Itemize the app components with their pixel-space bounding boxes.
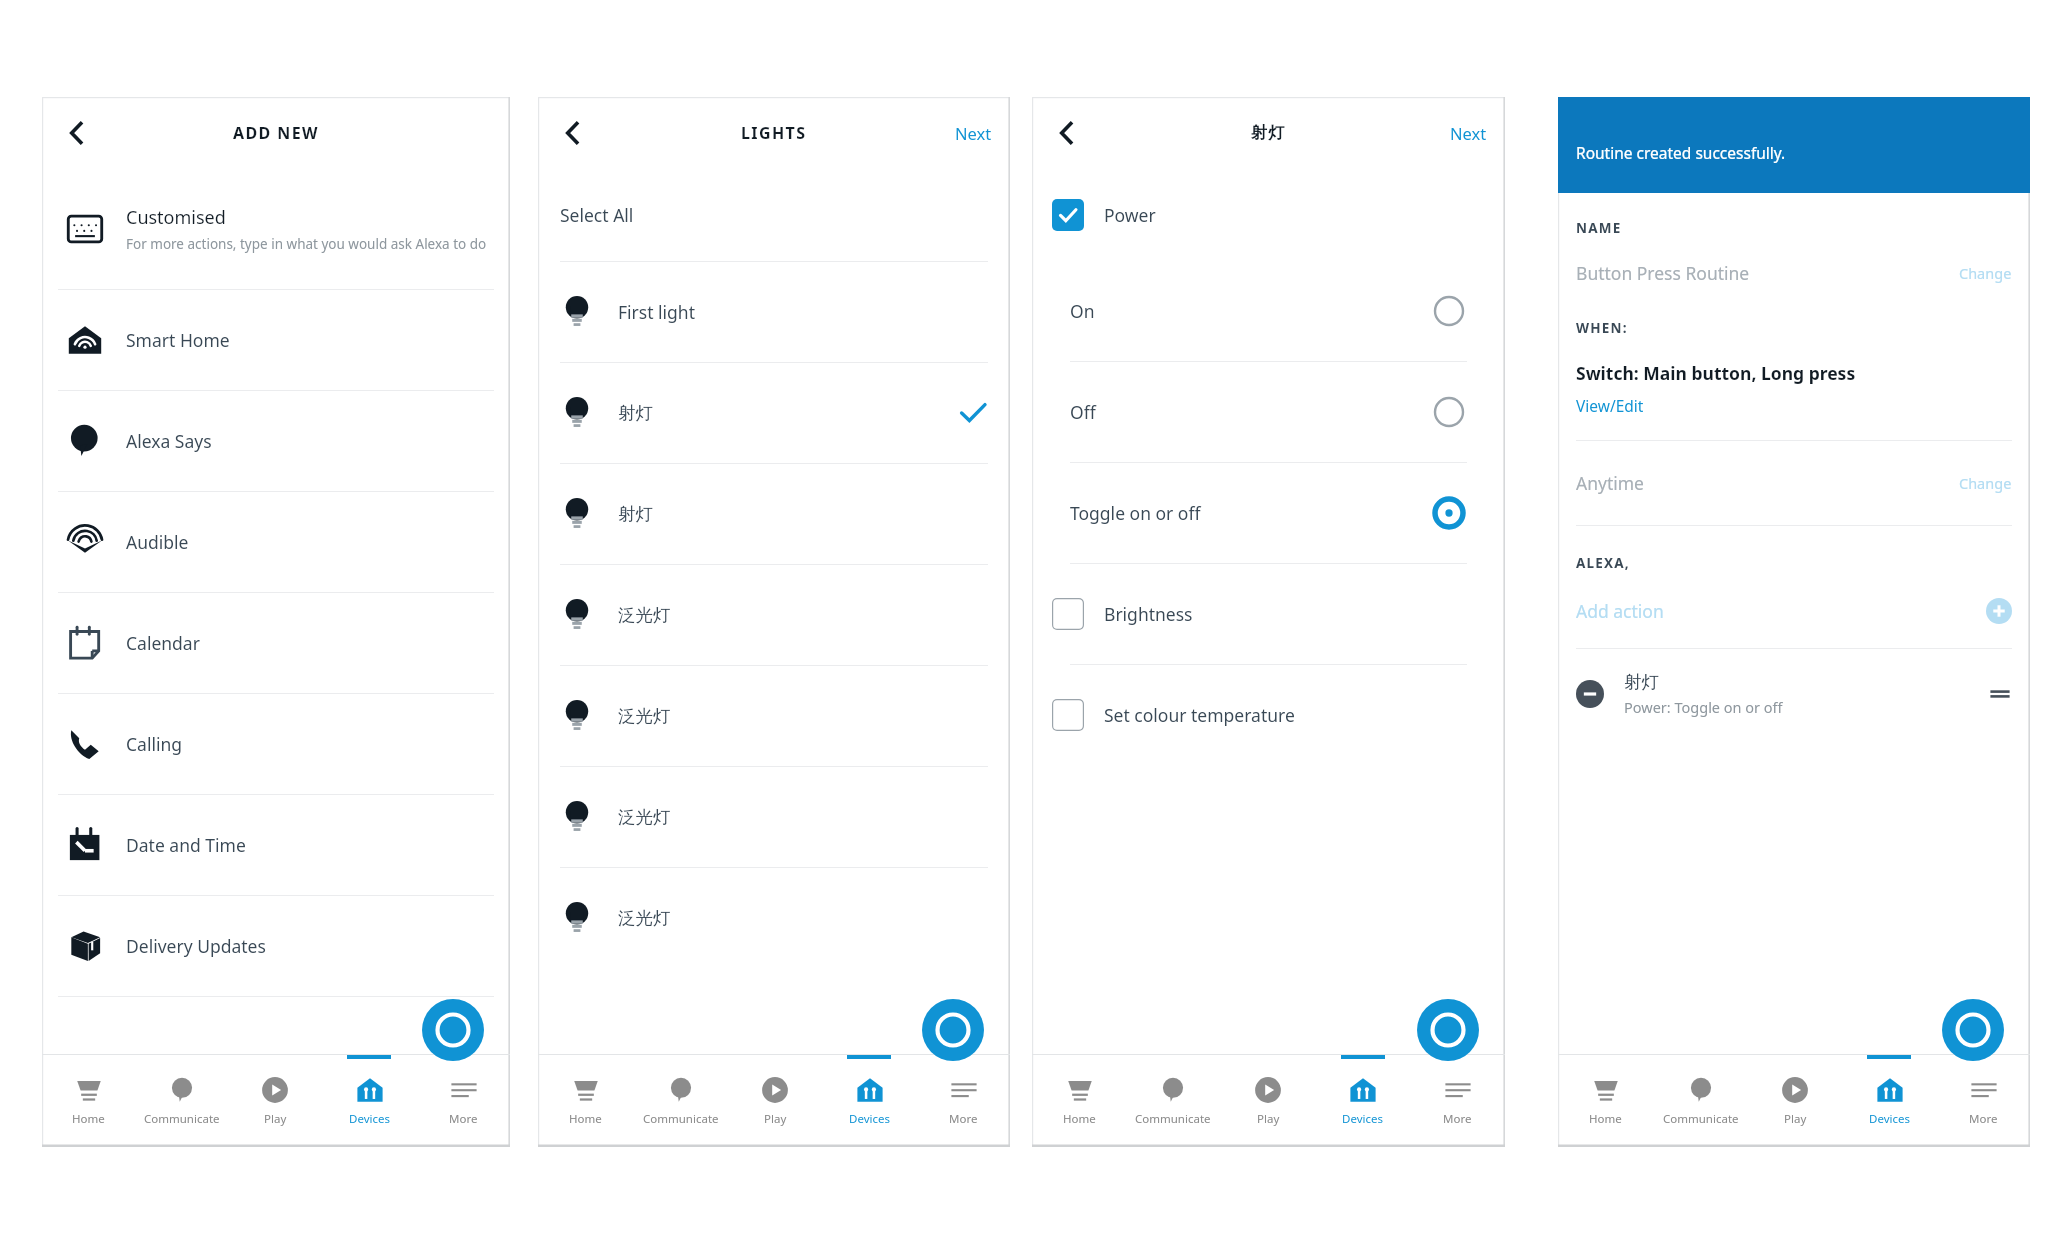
button[interactable]: Power bbox=[1032, 169, 1505, 261]
staticText: 射灯 bbox=[618, 402, 653, 424]
button[interactable]: Play bbox=[1220, 1055, 1315, 1147]
button[interactable]: Play bbox=[1748, 1055, 1842, 1147]
button[interactable]: On bbox=[1032, 261, 1505, 361]
button[interactable]: Communicate bbox=[1653, 1055, 1748, 1147]
button[interactable]: Alexa Says bbox=[42, 391, 510, 491]
button[interactable]: Devices bbox=[1842, 1055, 1936, 1147]
staticText: Devices bbox=[1342, 1111, 1383, 1127]
staticText: Routine created successfully. bbox=[1576, 142, 1786, 163]
staticText: Play bbox=[1784, 1111, 1807, 1127]
button[interactable]: Smart Home bbox=[42, 290, 510, 390]
staticText: First light bbox=[618, 300, 695, 324]
staticText: NAME bbox=[1576, 219, 1622, 237]
staticText: Devices bbox=[849, 1111, 890, 1127]
staticText: Communicate bbox=[1135, 1111, 1211, 1127]
button[interactable]: Audible bbox=[42, 492, 510, 592]
button[interactable]: Devices bbox=[322, 1055, 416, 1147]
staticText: Audible bbox=[126, 530, 189, 554]
button[interactable]: Play bbox=[728, 1055, 822, 1147]
other: Add action bbox=[1986, 598, 2012, 624]
button[interactable]: More bbox=[1936, 1055, 2030, 1147]
button[interactable]: Next bbox=[1432, 110, 1505, 156]
staticText: Communicate bbox=[1663, 1111, 1739, 1127]
button[interactable]: More bbox=[416, 1055, 510, 1147]
button[interactable]: Toggle on or off bbox=[1032, 463, 1505, 563]
button[interactable]: Customised bbox=[42, 169, 510, 289]
button[interactable]: Back bbox=[548, 108, 598, 158]
button[interactable]: Set colour temperature bbox=[1032, 665, 1505, 765]
staticText: Power: Toggle on or off bbox=[1624, 697, 1783, 717]
button[interactable]: Button Press Routine bbox=[1576, 261, 2012, 285]
staticText: Date and Time bbox=[126, 833, 246, 857]
button[interactable]: Home bbox=[1558, 1055, 1653, 1147]
button[interactable]: Back bbox=[1042, 108, 1092, 158]
button[interactable]: Select All bbox=[538, 169, 1010, 261]
button[interactable]: 泛光灯 bbox=[538, 565, 1010, 665]
button[interactable]: Devices bbox=[822, 1055, 916, 1147]
button[interactable]: 射灯 bbox=[538, 363, 1010, 463]
button[interactable]: Home bbox=[1032, 1055, 1126, 1147]
button[interactable]: Communicate bbox=[1126, 1055, 1220, 1147]
button[interactable]: Calling bbox=[42, 694, 510, 794]
staticText: 泛光灯 bbox=[618, 806, 671, 828]
button[interactable]: Alexa bbox=[422, 999, 484, 1061]
button[interactable]: Add action bbox=[1576, 598, 2012, 624]
button[interactable]: Play bbox=[228, 1055, 322, 1147]
staticText: Brightness bbox=[1104, 602, 1193, 626]
button[interactable]: 泛光灯 bbox=[538, 666, 1010, 766]
staticText: More bbox=[1443, 1111, 1472, 1127]
button[interactable]: Date and Time bbox=[42, 795, 510, 895]
staticText: On bbox=[1070, 299, 1095, 323]
staticText: Play bbox=[764, 1111, 787, 1127]
button[interactable]: 泛光灯 bbox=[538, 868, 1010, 968]
staticText: Switch: Main button, Long press bbox=[1576, 361, 1856, 385]
staticText: Devices bbox=[1869, 1111, 1910, 1127]
button[interactable]: Calendar bbox=[42, 593, 510, 693]
staticText: Set colour temperature bbox=[1104, 703, 1295, 727]
staticText: Power bbox=[1104, 203, 1156, 227]
button[interactable]: View/Edit bbox=[1576, 395, 1644, 416]
button[interactable]: Alexa bbox=[1942, 999, 2004, 1061]
staticText: LIGHTS bbox=[741, 122, 807, 144]
staticText: Calendar bbox=[126, 631, 200, 655]
staticText: Delivery Updates bbox=[126, 934, 266, 958]
staticText: Devices bbox=[349, 1111, 390, 1127]
button[interactable]: More bbox=[1410, 1055, 1505, 1147]
staticText: 射灯 bbox=[618, 503, 653, 525]
staticText: Play bbox=[1257, 1111, 1280, 1127]
button[interactable]: Home bbox=[538, 1055, 633, 1147]
button[interactable]: Remove action bbox=[1576, 671, 2012, 717]
button[interactable]: 射灯 bbox=[538, 464, 1010, 564]
button[interactable]: Next bbox=[937, 110, 1010, 156]
staticText: Home bbox=[1589, 1111, 1622, 1127]
button[interactable]: Alexa bbox=[922, 999, 984, 1061]
button[interactable]: More bbox=[916, 1055, 1010, 1147]
button[interactable]: Off bbox=[1032, 362, 1505, 462]
staticText: Home bbox=[1063, 1111, 1096, 1127]
staticText: Change bbox=[1959, 473, 2012, 493]
staticText: Anytime bbox=[1576, 471, 1644, 495]
button[interactable]: Communicate bbox=[633, 1055, 728, 1147]
button[interactable]: Brightness bbox=[1032, 564, 1505, 664]
button[interactable]: Devices bbox=[1315, 1055, 1410, 1147]
button[interactable]: 泛光灯 bbox=[538, 767, 1010, 867]
staticText: Home bbox=[569, 1111, 602, 1127]
staticText: For more actions, type in what you would… bbox=[126, 235, 487, 253]
button[interactable]: First light bbox=[538, 262, 1010, 362]
button[interactable]: Back bbox=[52, 108, 102, 158]
staticText: Add action bbox=[1576, 599, 1664, 623]
button[interactable]: Alexa bbox=[1417, 999, 1479, 1061]
button[interactable]: Anytime bbox=[1576, 471, 2012, 495]
staticText: Change bbox=[1959, 263, 2012, 283]
staticText: Next bbox=[955, 122, 992, 144]
button[interactable]: Delivery Updates bbox=[42, 896, 510, 996]
button[interactable]: Communicate bbox=[135, 1055, 228, 1147]
button[interactable]: Home bbox=[42, 1055, 135, 1147]
staticText: More bbox=[1969, 1111, 1998, 1127]
staticText: More bbox=[449, 1111, 478, 1127]
staticText: ALEXA, bbox=[1576, 554, 1630, 572]
staticText: Play bbox=[264, 1111, 287, 1127]
staticText: 射灯 bbox=[1624, 671, 1659, 693]
other: Reorder bbox=[1988, 682, 2012, 706]
staticText: More bbox=[949, 1111, 978, 1127]
